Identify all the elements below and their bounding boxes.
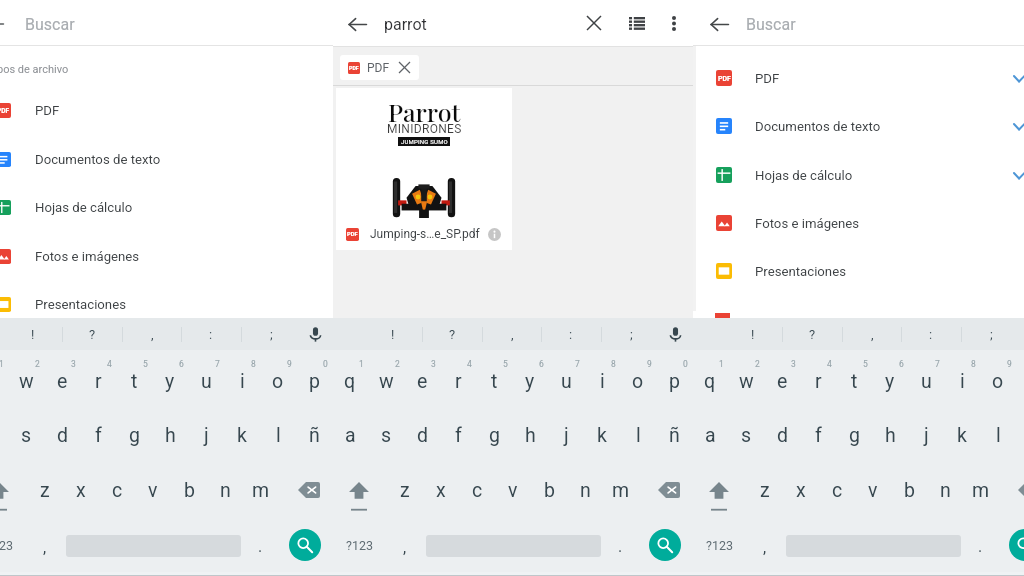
button[interactable]: Fotos e imágenes [693,199,1024,247]
button[interactable]: f [800,413,836,457]
button[interactable]: o [260,359,296,403]
button[interactable]: r [80,359,116,403]
button[interactable]: Back [343,10,371,38]
button[interactable]: : [909,318,953,350]
button[interactable]: v [495,468,531,512]
button[interactable]: l [620,413,656,457]
button[interactable]: j [908,413,944,457]
button[interactable]: Search [649,529,681,561]
button[interactable]: y [872,359,908,403]
button[interactable]: Backspace [291,473,327,507]
button[interactable]: z [387,468,423,512]
button[interactable]: a [332,413,368,457]
button[interactable]: z [747,468,783,512]
button[interactable]: n [927,468,963,512]
button[interactable]: ! [11,318,55,350]
button[interactable]: z [27,468,63,512]
button[interactable]: p [656,359,692,403]
button[interactable]: k [584,413,620,457]
button[interactable]: , [490,318,534,350]
button[interactable]: t [476,359,512,403]
button[interactable]: w [368,359,404,403]
button[interactable]: y [152,359,188,403]
button[interactable]: Clear query [580,9,608,37]
button[interactable]: m [243,468,279,512]
button[interactable]: u [188,359,224,403]
button[interactable]: o [980,359,1016,403]
button[interactable]: f [80,413,116,457]
button[interactable]: w [728,359,764,403]
button[interactable]: h [872,413,908,457]
button[interactable]: n [567,468,603,512]
button[interactable]: Hojas de cálculo [0,183,333,231]
button[interactable]: More options [660,9,688,37]
button[interactable]: u [548,359,584,403]
button[interactable]: Search [289,529,321,561]
button[interactable]: ! [731,318,775,350]
button[interactable]: e [44,359,80,403]
button[interactable]: Shift [0,476,17,518]
button[interactable]: Back [705,10,733,38]
button[interactable]: Presentaciones [0,280,333,328]
button[interactable]: h [512,413,548,457]
button[interactable]: y [512,359,548,403]
button[interactable]: a [692,413,728,457]
button[interactable]: s [728,413,764,457]
button[interactable]: i [584,359,620,403]
button[interactable]: ñ [296,413,332,457]
button[interactable]: g [836,413,872,457]
button[interactable]: Switch to list view [623,9,651,37]
button[interactable]: n [207,468,243,512]
button[interactable]: v [855,468,891,512]
button[interactable]: ñ [656,413,692,457]
button[interactable]: g [116,413,152,457]
button[interactable]: j [188,413,224,457]
button[interactable]: s [368,413,404,457]
button[interactable]: ? [430,318,474,350]
button[interactable]: Hojas de cálculo [693,151,1024,199]
button[interactable]: w [8,359,44,403]
button[interactable]: ; [609,318,653,350]
button[interactable]: Fotos e imágenes [0,232,333,280]
button[interactable]: r [800,359,836,403]
button[interactable]: m [963,468,999,512]
button[interactable]: Backspace [1011,473,1024,507]
button[interactable]: b [531,468,567,512]
button[interactable]: p [296,359,332,403]
button[interactable]: v [135,468,171,512]
button[interactable]: x [423,468,459,512]
button[interactable]: d [404,413,440,457]
button[interactable]: . [242,524,278,568]
button[interactable]: q [0,359,8,403]
button[interactable]: k [944,413,980,457]
button[interactable]: r [440,359,476,403]
button[interactable]: ; [969,318,1013,350]
button[interactable]: Backspace [651,473,687,507]
button[interactable]: Documentos de texto [0,135,333,183]
button[interactable]: , [130,318,174,350]
button[interactable]: i [944,359,980,403]
button[interactable]: , [387,525,423,569]
button[interactable]: l [980,413,1016,457]
button[interactable]: k [224,413,260,457]
button[interactable]: b [891,468,927,512]
button[interactable]: ?123 [695,530,743,560]
button[interactable]: l [260,413,296,457]
button[interactable]: t [836,359,872,403]
button[interactable]: , [747,525,783,569]
button[interactable]: PDF [340,55,419,80]
button[interactable]: ; [249,318,293,350]
button[interactable]: b [171,468,207,512]
button[interactable]: PDF [0,86,333,134]
button[interactable]: t [116,359,152,403]
button[interactable]: d [44,413,80,457]
button[interactable]: q [332,359,368,403]
button[interactable]: e [404,359,440,403]
button[interactable]: Search [1009,529,1024,561]
